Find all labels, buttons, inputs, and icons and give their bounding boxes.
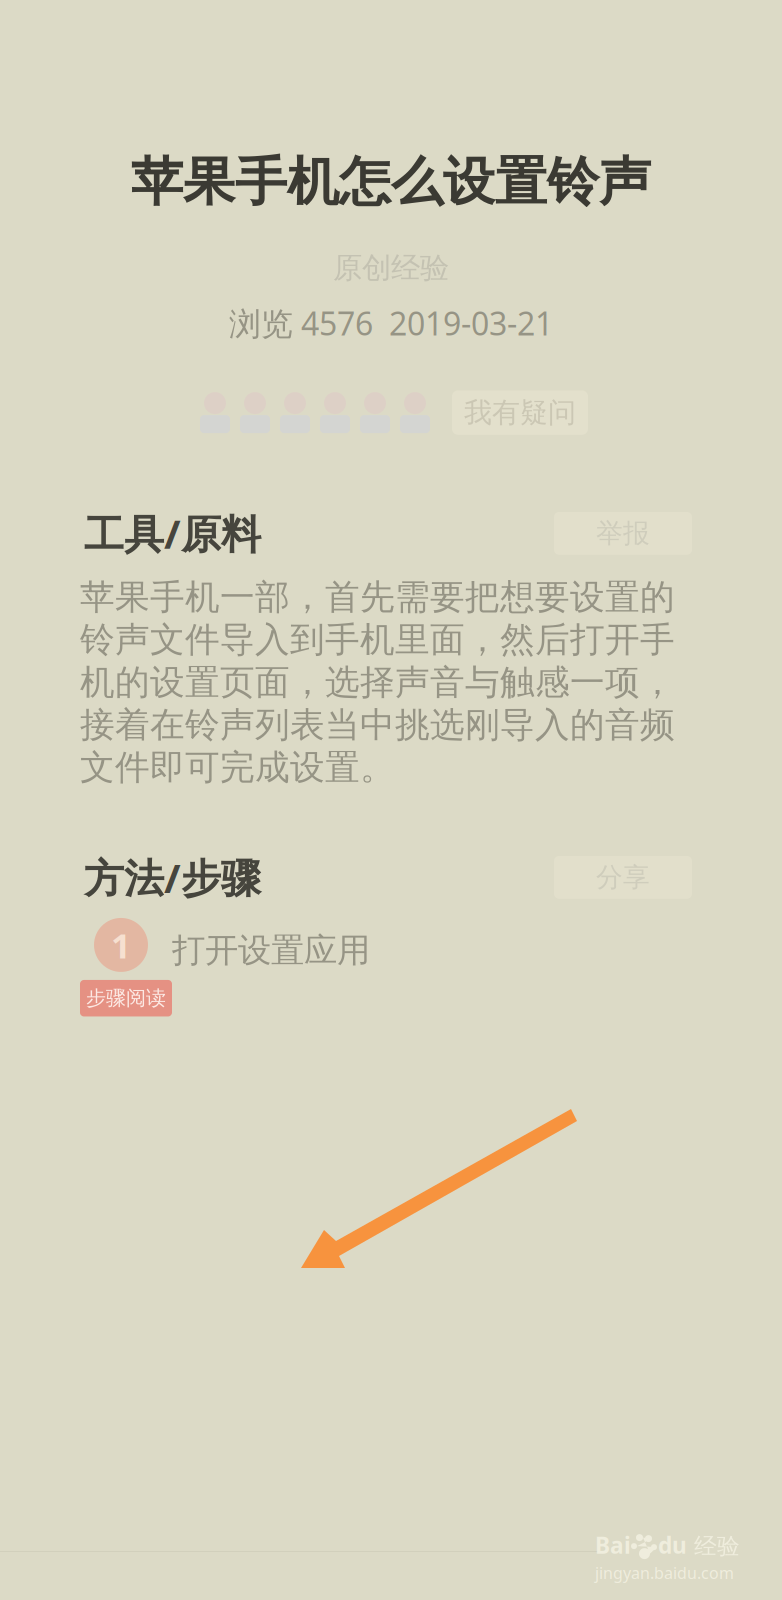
button[interactable]: 我有疑问 bbox=[452, 390, 588, 435]
staticText: Bai bbox=[595, 1530, 631, 1560]
staticText: 分享 bbox=[596, 861, 650, 894]
staticText: du bbox=[658, 1530, 687, 1560]
staticText: jingyan.baidu.com bbox=[595, 1562, 734, 1583]
button[interactable]: Rate this article bbox=[200, 392, 430, 434]
staticText: 步骤阅读 bbox=[86, 986, 166, 1010]
staticText: 浏览 4576 2019-03-21 bbox=[229, 302, 553, 344]
staticText: 打开设置应用 bbox=[172, 930, 370, 971]
staticText: 我有疑问 bbox=[464, 395, 576, 430]
staticText: 1 bbox=[111, 922, 131, 968]
staticText: 原创经验 bbox=[333, 250, 449, 286]
staticText: 方法/步骤 bbox=[84, 851, 261, 904]
button[interactable]: 举报 bbox=[554, 512, 692, 555]
staticText: 工具/原料 bbox=[84, 507, 261, 560]
button[interactable]: 步骤阅读 bbox=[80, 980, 172, 1016]
staticText: 苹果手机怎么设置铃声 bbox=[131, 150, 651, 214]
staticText: 经验 bbox=[687, 1532, 740, 1560]
staticText: 举报 bbox=[596, 517, 650, 550]
staticText: 苹果手机一部，首先需要把想要设置的铃声文件导入到手机里面，然后打开手机的设置页面… bbox=[80, 576, 675, 789]
button[interactable]: 分享 bbox=[554, 856, 692, 899]
